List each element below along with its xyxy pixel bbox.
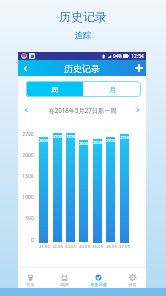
button[interactable]: Add xyxy=(132,60,146,76)
button[interactable]: Next week xyxy=(130,103,146,116)
button[interactable]: Back xyxy=(18,60,32,76)
staticText: 设置 xyxy=(128,282,137,287)
staticText: 周 xyxy=(51,85,58,94)
staticText: 历史记录 xyxy=(64,63,100,74)
staticText: 25.05 xyxy=(92,244,103,250)
staticText: 历史记录 xyxy=(90,282,107,287)
staticText: 2000 xyxy=(22,152,34,159)
staticText: 1500 xyxy=(22,173,34,180)
button[interactable]: 提醒 xyxy=(48,268,80,288)
button[interactable]: Previous week xyxy=(18,103,34,116)
staticText: 追踪 xyxy=(75,30,91,40)
staticText: 1000 xyxy=(22,194,34,201)
button[interactable]: 月 xyxy=(83,81,141,97)
staticText: 27.05 xyxy=(119,244,130,250)
button[interactable]: 饮水 xyxy=(14,268,46,288)
staticText: 月 xyxy=(109,85,116,94)
staticText: 提醒 xyxy=(60,282,69,287)
staticText: 500 xyxy=(25,215,34,222)
button[interactable]: 设置 xyxy=(116,268,148,288)
staticText: 在2018年5月27日那一周 xyxy=(48,106,117,114)
staticText: 2500 xyxy=(79,141,88,146)
staticText: 0 xyxy=(31,237,34,244)
staticText: 24.05 xyxy=(79,244,90,250)
staticText: 2600 xyxy=(93,140,102,145)
staticText: 饮水 xyxy=(26,282,35,287)
staticText: 2700 xyxy=(66,134,75,139)
button[interactable]: 历史记录 xyxy=(82,268,114,288)
staticText: 2600 xyxy=(39,138,48,143)
button[interactable]: 周 xyxy=(26,81,83,97)
staticText: 12:54 xyxy=(131,53,144,60)
staticText: 94% xyxy=(113,53,122,59)
staticText: 2700 xyxy=(120,135,129,140)
staticText: 2700 xyxy=(22,131,34,138)
staticText: 历史记录 xyxy=(59,9,107,24)
staticText: 23.05 xyxy=(65,244,76,250)
staticText: 2700 xyxy=(106,138,115,143)
staticText: 2700 xyxy=(53,134,62,139)
staticText: 22.05 xyxy=(52,244,63,250)
staticText: 26.05 xyxy=(106,244,117,250)
staticText: 21.05 xyxy=(39,244,50,250)
